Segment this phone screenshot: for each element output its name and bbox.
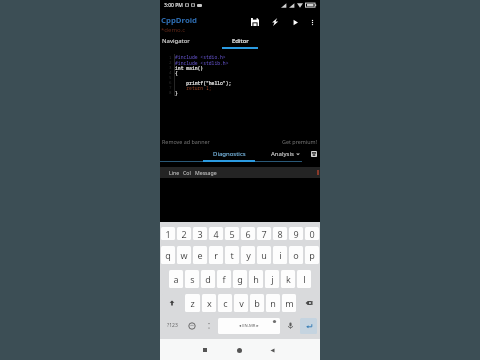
button[interactable]: 1 bbox=[161, 227, 175, 240]
staticText: 8 bbox=[169, 90, 172, 96]
staticText: u bbox=[261, 249, 267, 261]
button[interactable]: u bbox=[257, 246, 271, 264]
staticText: 1 bbox=[165, 228, 171, 240]
staticText: y bbox=[246, 249, 251, 261]
staticText: *demo.c bbox=[161, 26, 186, 34]
button[interactable]: Backspace bbox=[298, 294, 319, 312]
staticText: s bbox=[190, 273, 195, 285]
button[interactable]: Symbols bbox=[162, 317, 182, 334]
staticText: f bbox=[222, 273, 226, 285]
button[interactable]: Analysis bbox=[265, 148, 305, 164]
button[interactable]: b bbox=[250, 294, 264, 312]
button[interactable]: Editor bbox=[222, 35, 258, 49]
button[interactable]: Run bbox=[288, 15, 302, 29]
button[interactable]: j bbox=[265, 270, 279, 288]
staticText: 8 bbox=[277, 228, 283, 240]
button[interactable]: Save bbox=[248, 15, 262, 29]
button[interactable]: Emoji bbox=[184, 317, 200, 334]
button[interactable]: p bbox=[305, 246, 319, 264]
staticText: 7 bbox=[261, 228, 267, 240]
staticText: 9 bbox=[293, 228, 299, 240]
button[interactable]: Back bbox=[265, 343, 279, 357]
button[interactable]: Shift bbox=[161, 294, 183, 312]
staticText: 3:00 PM bbox=[164, 2, 183, 9]
button[interactable]: y bbox=[241, 246, 255, 264]
button[interactable]: Voice input bbox=[282, 317, 298, 334]
button[interactable]: n bbox=[266, 294, 280, 312]
staticText: Diagnostics bbox=[213, 150, 246, 158]
button[interactable]: Comma bbox=[202, 317, 216, 334]
staticText: c bbox=[223, 297, 228, 309]
staticText: Analysis bbox=[271, 150, 294, 158]
button[interactable]: v bbox=[234, 294, 248, 312]
button[interactable]: m bbox=[282, 294, 296, 312]
button[interactable]: s bbox=[185, 270, 199, 288]
button[interactable]: 5 bbox=[225, 227, 239, 240]
staticText: t bbox=[230, 249, 234, 261]
button[interactable]: r bbox=[209, 246, 223, 264]
button[interactable]: Home bbox=[232, 343, 246, 357]
staticText: Editor bbox=[232, 37, 249, 45]
button[interactable]: z bbox=[185, 294, 200, 312]
button[interactable]: 7 bbox=[257, 227, 271, 240]
button[interactable]: h bbox=[249, 270, 263, 288]
staticText: q bbox=[165, 249, 171, 261]
staticText: #include <stdlib.h> bbox=[175, 60, 229, 66]
staticText: ◂ EN-MR ▸ bbox=[239, 323, 259, 329]
button[interactable]: More options bbox=[305, 15, 319, 29]
button[interactable]: l bbox=[297, 270, 311, 288]
button[interactable]: a bbox=[169, 270, 183, 288]
button[interactable]: Enter bbox=[300, 318, 317, 334]
staticText: 2 bbox=[181, 228, 187, 240]
button[interactable]: Remove ad banner bbox=[162, 138, 210, 145]
button[interactable]: f bbox=[217, 270, 231, 288]
button[interactable]: Recents bbox=[198, 343, 212, 357]
staticText: m bbox=[285, 297, 294, 309]
button[interactable]: e bbox=[193, 246, 207, 264]
button[interactable]: 3 bbox=[193, 227, 207, 240]
staticText: w bbox=[180, 249, 188, 261]
staticText: j bbox=[271, 273, 274, 285]
button[interactable]: 9 bbox=[289, 227, 303, 240]
button[interactable]: 2 bbox=[177, 227, 191, 240]
button[interactable]: Navigator bbox=[160, 35, 220, 49]
staticText: i bbox=[279, 249, 282, 261]
button[interactable]: Diagnostics bbox=[203, 148, 255, 164]
button[interactable]: g bbox=[233, 270, 247, 288]
button[interactable]: k bbox=[281, 270, 295, 288]
staticText: #include <stdio.h> bbox=[175, 54, 226, 60]
button[interactable]: 6 bbox=[241, 227, 255, 240]
button[interactable]: 8 bbox=[273, 227, 287, 240]
button[interactable]: q bbox=[161, 246, 175, 264]
staticText: 2 bbox=[169, 60, 172, 66]
button[interactable]: Show keyboard bbox=[309, 149, 319, 159]
button[interactable]: ◂ EN-MR ▸ bbox=[218, 318, 280, 334]
staticText: Navigator bbox=[162, 37, 190, 45]
staticText: e bbox=[197, 249, 203, 261]
staticText: 6 bbox=[169, 80, 172, 86]
staticText: Message bbox=[195, 169, 217, 176]
staticText: return 1; bbox=[175, 85, 212, 91]
button[interactable]: Build bbox=[268, 15, 282, 29]
staticText: b bbox=[254, 297, 260, 309]
staticText: 5 bbox=[229, 228, 235, 240]
staticText: n bbox=[270, 297, 276, 309]
staticText: printf("hello"); bbox=[175, 80, 232, 86]
staticText: v bbox=[239, 297, 244, 309]
staticText: } bbox=[175, 90, 178, 96]
button[interactable]: Get premium! bbox=[282, 138, 318, 145]
button[interactable]: 0 bbox=[305, 227, 319, 240]
button[interactable]: x bbox=[202, 294, 216, 312]
staticText: z bbox=[190, 297, 195, 309]
staticText: 0 bbox=[309, 228, 315, 240]
staticText: l bbox=[303, 273, 306, 285]
button[interactable]: i bbox=[273, 246, 287, 264]
button[interactable]: d bbox=[201, 270, 215, 288]
staticText: h bbox=[253, 273, 259, 285]
button[interactable]: o bbox=[289, 246, 303, 264]
button[interactable]: t bbox=[225, 246, 239, 264]
button[interactable]: w bbox=[177, 246, 191, 264]
button[interactable]: 4 bbox=[209, 227, 223, 240]
button[interactable]: c bbox=[218, 294, 232, 312]
staticText: CppDroid bbox=[161, 15, 198, 26]
